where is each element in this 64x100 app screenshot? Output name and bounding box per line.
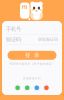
staticText: Hi — [22, 3, 28, 18]
staticText: 其他登录方式 — [23, 77, 41, 80]
button[interactable]: Weibo — [43, 84, 50, 91]
staticText: 登录即代表同意《用户服务协议》 — [9, 62, 54, 66]
button[interactable]: 获取验证码 — [38, 37, 58, 42]
button[interactable]: 登 录 — [7, 51, 56, 60]
button[interactable]: Moments — [23, 84, 31, 91]
staticText: 手机号 — [6, 26, 21, 32]
staticText: 登 录 — [25, 52, 39, 59]
button[interactable]: WeChat — [14, 84, 21, 91]
button[interactable]: QQ — [33, 84, 40, 91]
staticText: 获取验证码 — [38, 37, 58, 42]
staticText: 验证码 — [6, 36, 21, 43]
button[interactable]: 登录即代表同意《用户服务协议》 — [9, 62, 54, 66]
